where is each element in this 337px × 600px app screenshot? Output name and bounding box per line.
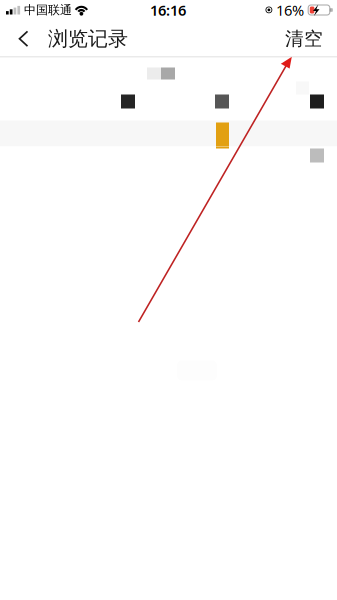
staticText: 16%: [276, 0, 304, 20]
button[interactable]: History item 3: [0, 146, 337, 206]
button[interactable]: History item 2: [0, 120, 337, 146]
button[interactable]: History item 1: [0, 57, 337, 120]
button[interactable]: 清空: [273, 21, 335, 56]
staticText: 浏览记录: [48, 26, 128, 51]
staticText: 清空: [285, 27, 323, 50]
staticText: 中国联通: [24, 3, 72, 17]
button[interactable]: Back: [7, 21, 40, 56]
staticText: 16:16: [150, 0, 186, 20]
button[interactable]: 浏览记录: [40, 21, 128, 56]
